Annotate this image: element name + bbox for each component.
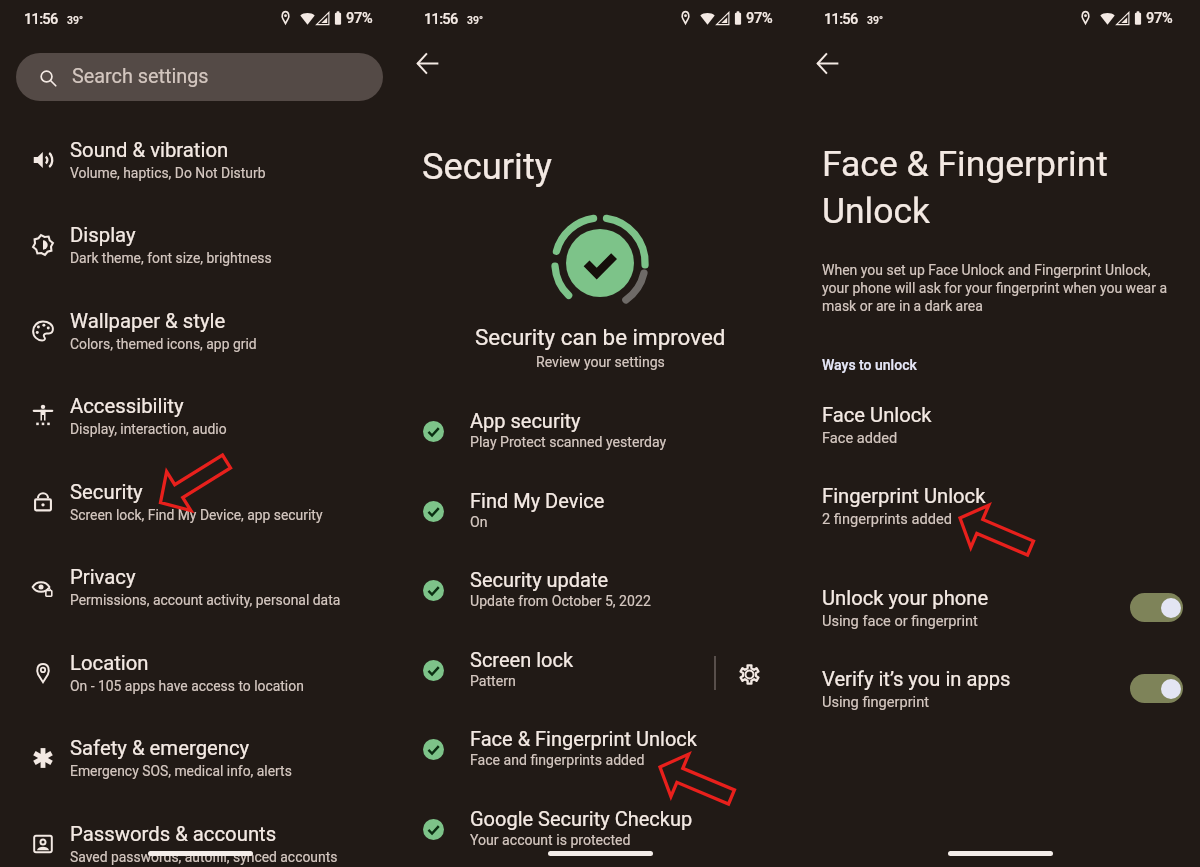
staticText: Security bbox=[70, 480, 143, 504]
staticText: 97% bbox=[746, 9, 773, 26]
staticText: 11:56 bbox=[824, 10, 858, 27]
staticText: Saved passwords, autofill, synced accoun… bbox=[70, 849, 338, 865]
button[interactable]: Fingerprint Unlock bbox=[800, 476, 1200, 546]
button[interactable]: Location bbox=[0, 630, 400, 716]
button[interactable]: Search settings bbox=[16, 53, 383, 101]
staticText: 11:56 bbox=[424, 10, 458, 27]
staticText: Dark theme, font size, brightness bbox=[70, 250, 272, 266]
button[interactable]: Sound & vibration bbox=[0, 117, 400, 203]
staticText: 97% bbox=[346, 9, 373, 26]
staticText: Using fingerprint bbox=[822, 693, 929, 710]
staticText: Face & Fingerprint Unlock bbox=[470, 727, 697, 750]
button[interactable]: Google Security Checkup bbox=[400, 789, 800, 867]
staticText: Unlock your phone bbox=[822, 586, 989, 610]
staticText: Review your settings bbox=[536, 354, 665, 371]
staticText: Emergency SOS, medical info, alerts bbox=[70, 763, 292, 779]
staticText: Security bbox=[422, 145, 552, 188]
button[interactable]: Screen lock settings bbox=[726, 651, 772, 697]
button[interactable]: Accessibility bbox=[0, 373, 400, 459]
staticText: Update from October 5, 2022 bbox=[470, 593, 651, 610]
staticText: Accessibility bbox=[70, 394, 184, 418]
button[interactable]: Face & Fingerprint Unlock bbox=[400, 709, 800, 789]
staticText: Sound & vibration bbox=[70, 138, 229, 162]
button[interactable]: Security update bbox=[400, 550, 800, 630]
staticText: Ways to unlock bbox=[822, 357, 917, 373]
staticText: 97% bbox=[1146, 9, 1173, 26]
staticText: Security can be improved bbox=[475, 324, 726, 350]
staticText: App security bbox=[470, 409, 581, 432]
staticText: Play Protect scanned yesterday bbox=[470, 434, 667, 451]
staticText: Verify it’s you in apps bbox=[822, 667, 1011, 691]
button[interactable]: Back bbox=[405, 41, 450, 86]
staticText: Search settings bbox=[72, 65, 209, 88]
staticText: Find My Device bbox=[470, 489, 605, 512]
button[interactable]: Wallpaper & style bbox=[0, 288, 400, 374]
staticText: Permissions, account activity, personal … bbox=[70, 592, 341, 608]
staticText: 39° bbox=[67, 14, 83, 26]
button[interactable]: Display bbox=[0, 202, 400, 288]
staticText: Security update bbox=[470, 568, 609, 591]
button[interactable]: Find My Device bbox=[400, 471, 800, 551]
staticText: Volume, haptics, Do Not Disturb bbox=[70, 165, 266, 181]
button[interactable]: Face Unlock bbox=[800, 395, 1200, 465]
staticText: Google Security Checkup bbox=[470, 807, 693, 830]
staticText: On bbox=[470, 514, 488, 531]
staticText: 2 fingerprints added bbox=[822, 510, 952, 527]
button[interactable]: Passwords & accounts bbox=[0, 801, 400, 867]
staticText: Face & Fingerprint Unlock bbox=[822, 143, 1108, 231]
staticText: Face and fingerprints added bbox=[470, 752, 645, 769]
button[interactable]: App security bbox=[400, 391, 800, 471]
staticText: Face added bbox=[822, 429, 898, 446]
staticText: Wallpaper & style bbox=[70, 309, 226, 333]
staticText: Fingerprint Unlock bbox=[822, 484, 986, 508]
staticText: Location bbox=[70, 651, 149, 675]
staticText: Using face or fingerprint bbox=[822, 612, 978, 629]
staticText: 11:56 bbox=[24, 10, 58, 27]
staticText: Screen lock bbox=[470, 648, 574, 671]
staticText: Face Unlock bbox=[822, 403, 932, 427]
button[interactable]: Back bbox=[805, 41, 850, 86]
staticText: On - 105 apps have access to location bbox=[70, 678, 304, 694]
staticText: Privacy bbox=[70, 565, 136, 589]
staticText: Display bbox=[70, 223, 136, 247]
staticText: Safety & emergency bbox=[70, 736, 250, 760]
staticText: Display, interaction, audio bbox=[70, 421, 227, 437]
staticText: Passwords & accounts bbox=[70, 822, 277, 846]
button[interactable]: Verify it’s you in apps bbox=[800, 659, 1200, 729]
staticText: Your account is protected bbox=[470, 832, 631, 849]
button[interactable]: Screen lock bbox=[400, 630, 800, 710]
staticText: Pattern bbox=[470, 673, 516, 690]
staticText: Colors, themed icons, app grid bbox=[70, 336, 257, 352]
staticText: When you set up Face Unlock and Fingerpr… bbox=[822, 262, 1174, 315]
staticText: Screen lock, Find My Device, app securit… bbox=[70, 507, 323, 523]
staticText: 39° bbox=[467, 14, 483, 26]
button[interactable]: Security bbox=[0, 459, 400, 545]
button[interactable]: Unlock your phone bbox=[800, 578, 1200, 648]
button[interactable]: Safety & emergency bbox=[0, 715, 400, 801]
staticText: 39° bbox=[867, 14, 883, 26]
button[interactable]: Privacy bbox=[0, 544, 400, 630]
